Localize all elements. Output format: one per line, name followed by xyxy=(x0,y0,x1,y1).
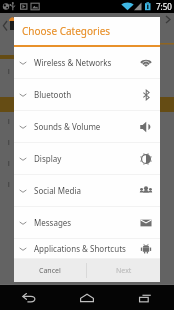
button[interactable]: Social Media xyxy=(14,175,160,207)
button[interactable]: Applications & Shortcuts xyxy=(14,239,160,259)
button[interactable]: Messages xyxy=(14,207,160,239)
button[interactable]: Wireless & Networks xyxy=(14,47,160,79)
button[interactable]: Home xyxy=(58,285,116,310)
staticText: Wireless & Networks xyxy=(34,57,140,68)
staticText: Cancel xyxy=(39,266,61,276)
staticText: Applications & Shortcuts xyxy=(34,243,140,254)
button[interactable]: Display xyxy=(14,143,160,175)
button[interactable]: Next xyxy=(87,259,160,282)
staticText: 7:50 xyxy=(156,1,172,12)
staticText: Bluetooth xyxy=(34,89,140,100)
button[interactable]: Cancel xyxy=(14,259,86,282)
staticText: Messages xyxy=(34,217,140,228)
button[interactable]: Recents xyxy=(116,285,174,310)
button[interactable]: Bluetooth xyxy=(14,79,160,111)
button[interactable]: Sounds & Volume xyxy=(14,111,160,143)
button[interactable]: Back xyxy=(0,285,58,310)
staticText: Sounds & Volume xyxy=(34,121,140,132)
staticText: Social Media xyxy=(34,185,140,196)
staticText: Choose Categories xyxy=(22,24,111,38)
staticText: Next xyxy=(116,266,132,276)
staticText: Display xyxy=(34,153,140,164)
